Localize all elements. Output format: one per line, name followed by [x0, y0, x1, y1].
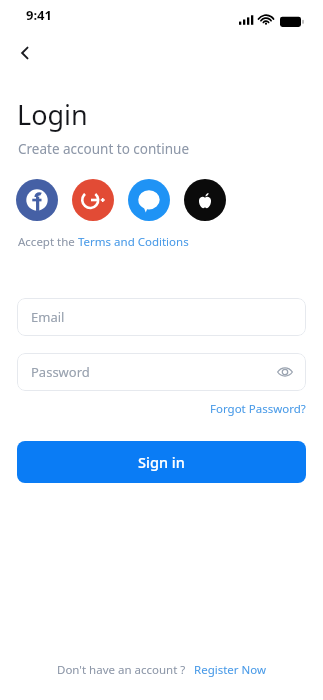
button[interactable]: Sign in with Facebook — [16, 179, 58, 221]
staticText: 9:41 — [26, 6, 52, 24]
button[interactable]: Register Now — [194, 662, 267, 678]
button[interactable]: Sign in with Messenger — [128, 179, 170, 221]
staticText: Terms and Coditions — [78, 234, 189, 250]
button[interactable]: Sign in with Google — [72, 179, 114, 221]
staticText: Login — [17, 96, 88, 133]
button[interactable]: Back — [8, 36, 42, 70]
button[interactable]: Show password — [272, 359, 298, 385]
button[interactable]: Sign in — [17, 441, 306, 483]
staticText: Password — [31, 363, 90, 381]
button[interactable]: Forgot Password? — [210, 399, 323, 419]
button[interactable]: Password — [17, 353, 306, 391]
button[interactable]: Accept the — [18, 234, 189, 250]
button[interactable]: Email — [17, 298, 306, 336]
button[interactable]: Sign in with Apple — [184, 179, 226, 221]
staticText: Don't have an account ? — [57, 662, 186, 678]
staticText: Accept the — [18, 234, 78, 250]
staticText: Create account to continue — [18, 140, 189, 158]
staticText: Email — [31, 308, 65, 326]
staticText: Sign in — [138, 452, 185, 472]
